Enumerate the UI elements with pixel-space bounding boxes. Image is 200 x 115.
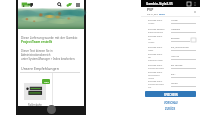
button[interactable]: Einträge wählt Partnerland Bez: [148, 62, 196, 71]
button[interactable]: Einträge wählt für Frankfurt/Main: [148, 53, 196, 62]
button[interactable]: Einträge gewählt Ergänzfunktion: [148, 26, 196, 35]
staticText: Einträge wählt Mwst: [148, 46, 165, 52]
button[interactable]: Einträge wählt Partnerland Bez Ort: [148, 80, 196, 89]
staticText: ProjectTeam erstellt: [21, 40, 53, 44]
staticText: Dieser Text können Sie in Administration…: [21, 49, 81, 57]
button[interactable]: Mehr: [192, 1, 197, 6]
staticText: Mehr: [159, 13, 166, 16]
button[interactable]: VORSCHAU: [141, 99, 200, 105]
button[interactable]: Einträge wählt für Artikel: [148, 35, 196, 44]
button[interactable]: SPEICHERN: [145, 91, 196, 97]
button[interactable]: Einträge wählt Mwst: [148, 44, 196, 53]
staticText: Einträge wählt Partnerland Bez: [148, 64, 165, 70]
staticText: Einträge wählt Gestaltherd Neufa: [148, 71, 165, 80]
staticText: Einträge wählt für Artikel: [148, 35, 165, 44]
button[interactable]: Einträge wählt Gestaltherd Neufa: [148, 71, 196, 80]
staticText: ein Vertrag: [171, 64, 183, 67]
button[interactable]: Einträge wählt Artikel: [148, 17, 196, 26]
staticText: SPEICHERN: [164, 93, 178, 96]
staticText: ZURÜCK: [165, 107, 176, 110]
button[interactable]: Rollenbahn: [18, 73, 52, 106]
staticText: Rollenbahn: [28, 103, 42, 106]
staticText: Neu: [44, 80, 49, 83]
staticText: 188.100: [171, 55, 180, 58]
staticText: PVP: [147, 7, 154, 12]
staticText: DE 41,859: [147, 13, 159, 16]
button[interactable]: Auswahl: [191, 38, 196, 42]
button[interactable]: Speichern: [186, 1, 191, 6]
button[interactable]: PVP: [147, 7, 196, 16]
button[interactable]: Suche: [56, 1, 63, 8]
button[interactable]: ZURÜCK: [141, 105, 200, 111]
staticText: Verlag: [171, 82, 178, 85]
staticText: Bestand: [171, 37, 180, 40]
staticText: Diese Lieferung wurde mit der Gambio: [21, 36, 78, 40]
staticText: auf_abschnitt.jpg: [171, 46, 189, 49]
staticText: VORSCHAU: [164, 101, 178, 104]
staticText: Gambio-Style3.05: [146, 2, 173, 6]
staticText: Lieferant: [171, 28, 181, 31]
button[interactable]: Warenkorb: [65, 1, 72, 8]
staticText: Einträge wählt für Frankfurt/Main: [148, 53, 165, 62]
staticText: Einträge gewählt Ergänzfunktion: [148, 28, 165, 34]
staticText: Einträge wählt Artikel: [148, 19, 165, 25]
staticText: Einträge wählt Partnerland Bez Ort: [148, 80, 165, 89]
staticText: auf...: [171, 73, 177, 76]
staticText: unter System-Manager > Index bearbeiten.: [21, 57, 76, 61]
staticText: Artikel: [171, 19, 178, 22]
button[interactable]: Menü: [74, 1, 81, 8]
staticText: Unsere Empfehlungen: [21, 66, 59, 71]
